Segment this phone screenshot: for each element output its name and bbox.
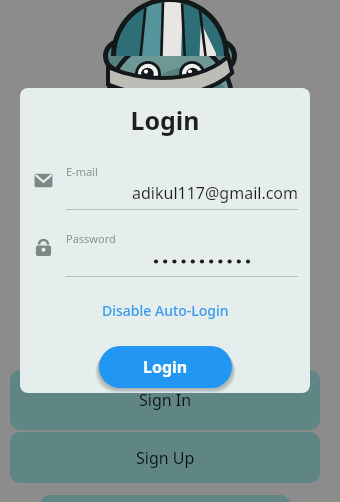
staticText: E-mail [66,164,98,179]
staticText: Login [20,103,310,137]
staticText: Disable Auto-Login [102,301,229,320]
other: E-mail [34,171,53,190]
button[interactable]: Disable Auto-Login [20,296,310,324]
staticText: adikul117@gmail.com [66,182,298,204]
button[interactable] [40,495,290,502]
other: Password [34,238,53,257]
staticText: Sign Up [136,447,195,469]
staticText: Password [66,231,116,246]
button[interactable]: Login [99,346,232,388]
staticText: Sign In [139,389,192,411]
staticText: Login [143,356,188,378]
button[interactable]: Sign In [10,370,320,430]
button[interactable]: Sign Up [10,432,320,483]
